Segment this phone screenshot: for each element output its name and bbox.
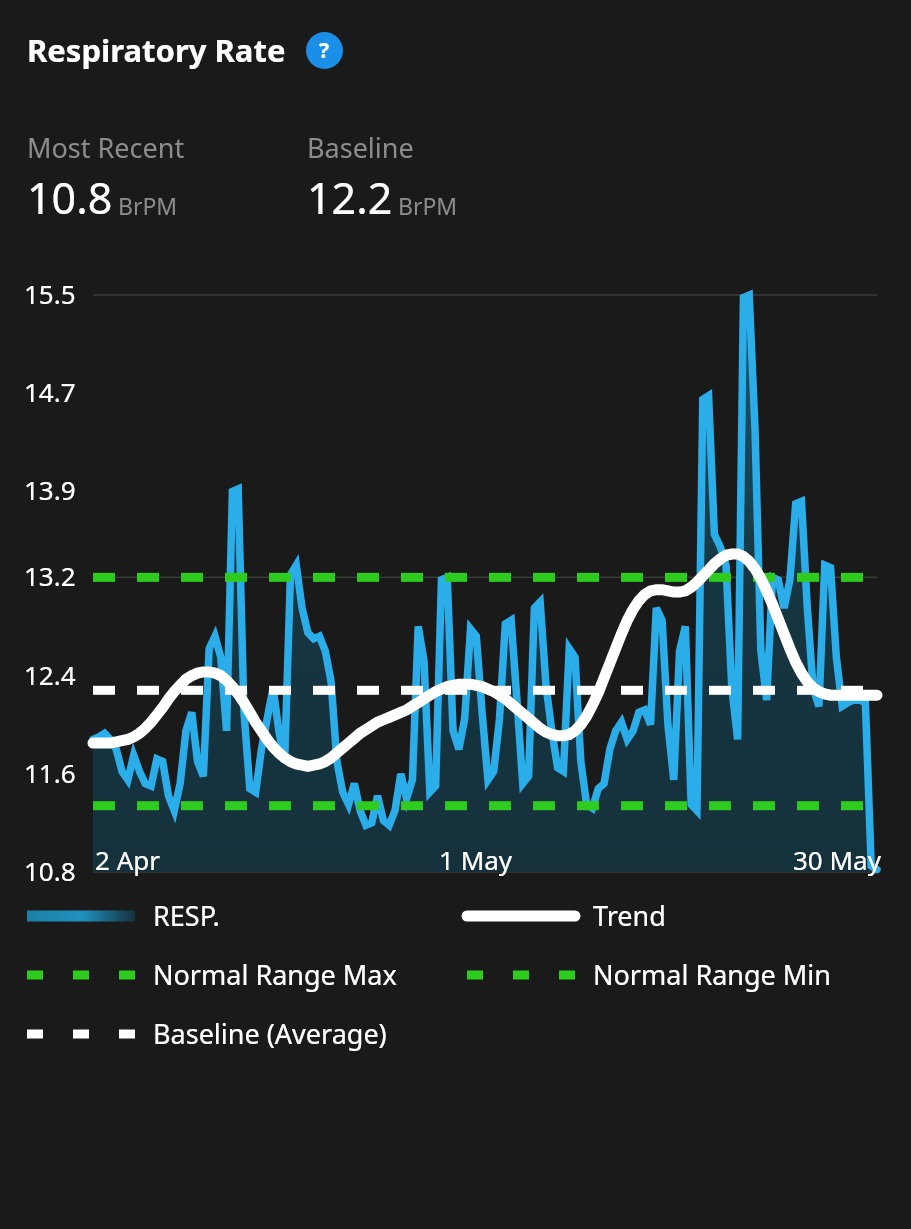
staticText: 10.8 <box>27 168 113 227</box>
button[interactable]: Normal Range Min <box>467 956 911 993</box>
staticText: Trend <box>593 897 666 934</box>
staticText: 12.2 <box>307 168 393 227</box>
button[interactable]: Normal Range Max <box>27 956 440 993</box>
staticText: 10.8 <box>24 853 76 888</box>
staticText: ? <box>319 36 330 65</box>
staticText: Normal Range Max <box>153 956 397 993</box>
staticText: 12.4 <box>24 657 76 692</box>
staticText: Respiratory Rate <box>27 29 286 71</box>
staticText: 15.5 <box>24 276 76 311</box>
staticText: Most Recent <box>27 129 185 166</box>
button[interactable]: Help about Respiratory Rate <box>306 32 343 69</box>
staticText: RESP. <box>153 897 220 934</box>
staticText: 11.6 <box>24 755 76 790</box>
button[interactable]: RESP. <box>27 897 440 934</box>
staticText: Baseline <box>307 129 414 166</box>
staticText: 2 Apr <box>95 842 160 877</box>
button[interactable]: Trend <box>467 897 911 934</box>
button[interactable]: Baseline (Average) <box>27 1015 440 1052</box>
staticText: BrPM <box>118 190 178 221</box>
staticText: 14.7 <box>24 374 76 409</box>
staticText: 30 May <box>793 842 881 877</box>
staticText: 1 May <box>439 842 513 877</box>
staticText: BrPM <box>398 190 458 221</box>
staticText: Normal Range Min <box>593 956 832 993</box>
button[interactable]: Respiratory Rate <box>27 29 343 71</box>
staticText: 13.2 <box>24 558 76 593</box>
staticText: Baseline (Average) <box>153 1015 387 1052</box>
staticText: 13.9 <box>24 472 76 507</box>
